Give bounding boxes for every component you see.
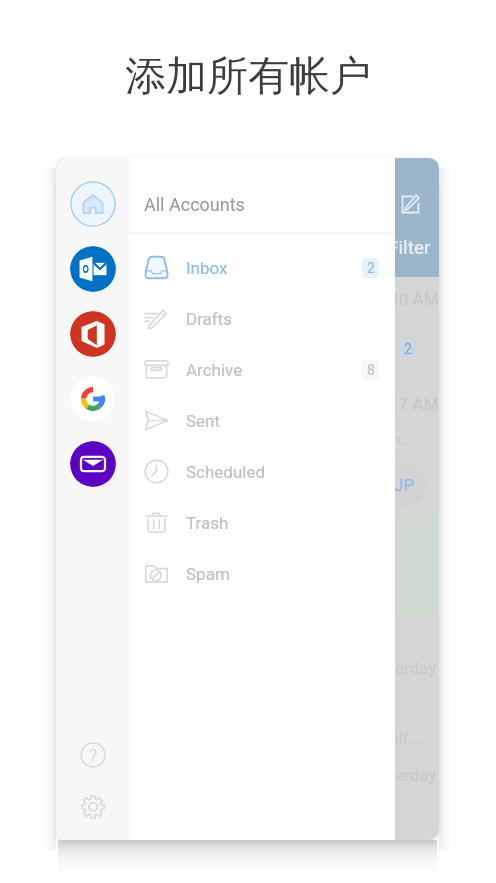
button[interactable]: Settings [73, 787, 113, 827]
staticText: Filter [388, 236, 431, 258]
staticText: 添加所有帐户 [125, 51, 371, 103]
button[interactable]: Inbox [129, 242, 395, 293]
button[interactable]: Home [70, 181, 116, 227]
staticText: 2 [404, 341, 412, 357]
staticText: Scheduled [186, 462, 266, 482]
staticText: Their.... [370, 727, 426, 747]
staticText: All Accounts [144, 194, 245, 215]
button[interactable]: Google account [70, 376, 116, 422]
staticText: Archive [186, 360, 243, 380]
staticText: Inbox [186, 258, 228, 278]
button[interactable]: Mail account [70, 441, 116, 487]
staticText: Yesterday [362, 658, 437, 678]
button[interactable]: Drafts [129, 293, 395, 344]
staticText: Sun... [374, 430, 414, 449]
staticText: JP [394, 475, 415, 495]
staticText: Sent [186, 411, 221, 431]
button[interactable]: Help [73, 735, 113, 775]
button[interactable]: Sent [129, 395, 395, 446]
staticText: 2 [367, 260, 375, 276]
button[interactable]: Archive [129, 344, 395, 395]
button[interactable]: Scheduled [129, 446, 395, 497]
staticText: Trash [186, 513, 229, 533]
button[interactable]: All Accounts [129, 158, 395, 232]
staticText: 8 [367, 362, 375, 378]
button[interactable]: Trash [129, 497, 395, 548]
button[interactable]: Office account [70, 311, 116, 357]
staticText: Yesterday [362, 765, 437, 785]
button[interactable]: Outlook account [70, 246, 116, 292]
staticText: Spam [186, 564, 230, 584]
staticText: 10:17 AM [366, 394, 439, 414]
staticText: Drafts [186, 309, 233, 329]
staticText: 10:30 AM [366, 289, 439, 309]
button[interactable]: Spam [129, 548, 395, 599]
